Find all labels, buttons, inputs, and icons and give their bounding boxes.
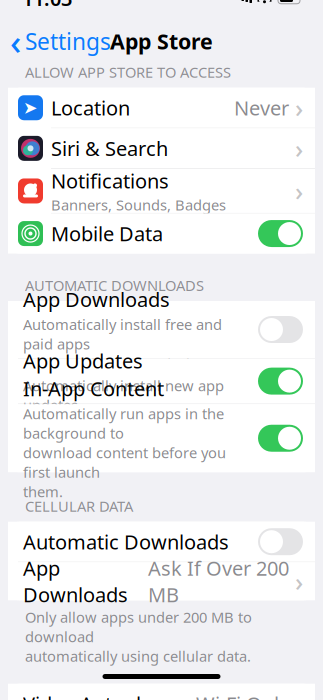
- staticText: Siri & Search: [51, 135, 168, 162]
- staticText: Notifications: [51, 167, 169, 194]
- staticText: App Downloads: [23, 286, 170, 313]
- staticText: AUTOMATIC DOWNLOADS: [25, 275, 204, 295]
- staticText: ALLOW APP STORE TO ACCESS: [25, 62, 231, 82]
- staticText: Video Autoplay: [23, 690, 162, 700]
- staticText: Wi-Fi Only: [196, 690, 289, 700]
- staticText: CELLULAR DATA: [25, 496, 133, 516]
- staticText: ‹: [10, 18, 21, 64]
- staticText: ›: [295, 91, 303, 124]
- staticText: 11:03: [22, 0, 72, 12]
- button[interactable]: ‹: [0, 14, 111, 68]
- button[interactable]: Video Autoplay: [8, 684, 315, 700]
- staticText: Ask If Over 200 MB: [148, 555, 289, 608]
- staticText: Never: [234, 94, 289, 121]
- button[interactable]: Siri & Search: [8, 128, 315, 168]
- button[interactable]: Mobile Data: [8, 213, 315, 253]
- staticText: Automatically install new app updates.: [23, 376, 224, 415]
- staticText: ›: [295, 131, 303, 165]
- staticText: App Updates: [23, 347, 143, 374]
- button[interactable]: ➤: [8, 88, 315, 128]
- staticText: Settings: [25, 26, 111, 56]
- button[interactable]: Notifications: [8, 169, 315, 213]
- button[interactable]: Automatic Downloads: [8, 522, 315, 562]
- button[interactable]: App Downloads: [8, 301, 315, 358]
- staticText: In-App Content: [23, 375, 164, 402]
- staticText: Automatically run apps in the background…: [23, 404, 226, 501]
- staticText: ›: [295, 564, 303, 598]
- staticText: Automatic Downloads: [23, 528, 229, 555]
- staticText: App Downloads: [23, 555, 128, 608]
- button[interactable]: App Updates: [8, 359, 315, 404]
- staticText: Location: [51, 94, 130, 121]
- staticText: ›: [295, 174, 303, 208]
- staticText: ➤: [23, 98, 38, 118]
- staticText: App Store: [110, 27, 213, 55]
- staticText: Mobile Data: [51, 220, 163, 247]
- staticText: Automatically install free and paid apps…: [23, 315, 222, 373]
- staticText: Banners, Sounds, Badges: [51, 195, 226, 214]
- staticText: Only allow apps under 200 MB to download…: [25, 607, 252, 666]
- button[interactable]: In-App Content: [8, 404, 315, 472]
- button[interactable]: App Downloads: [8, 562, 315, 600]
